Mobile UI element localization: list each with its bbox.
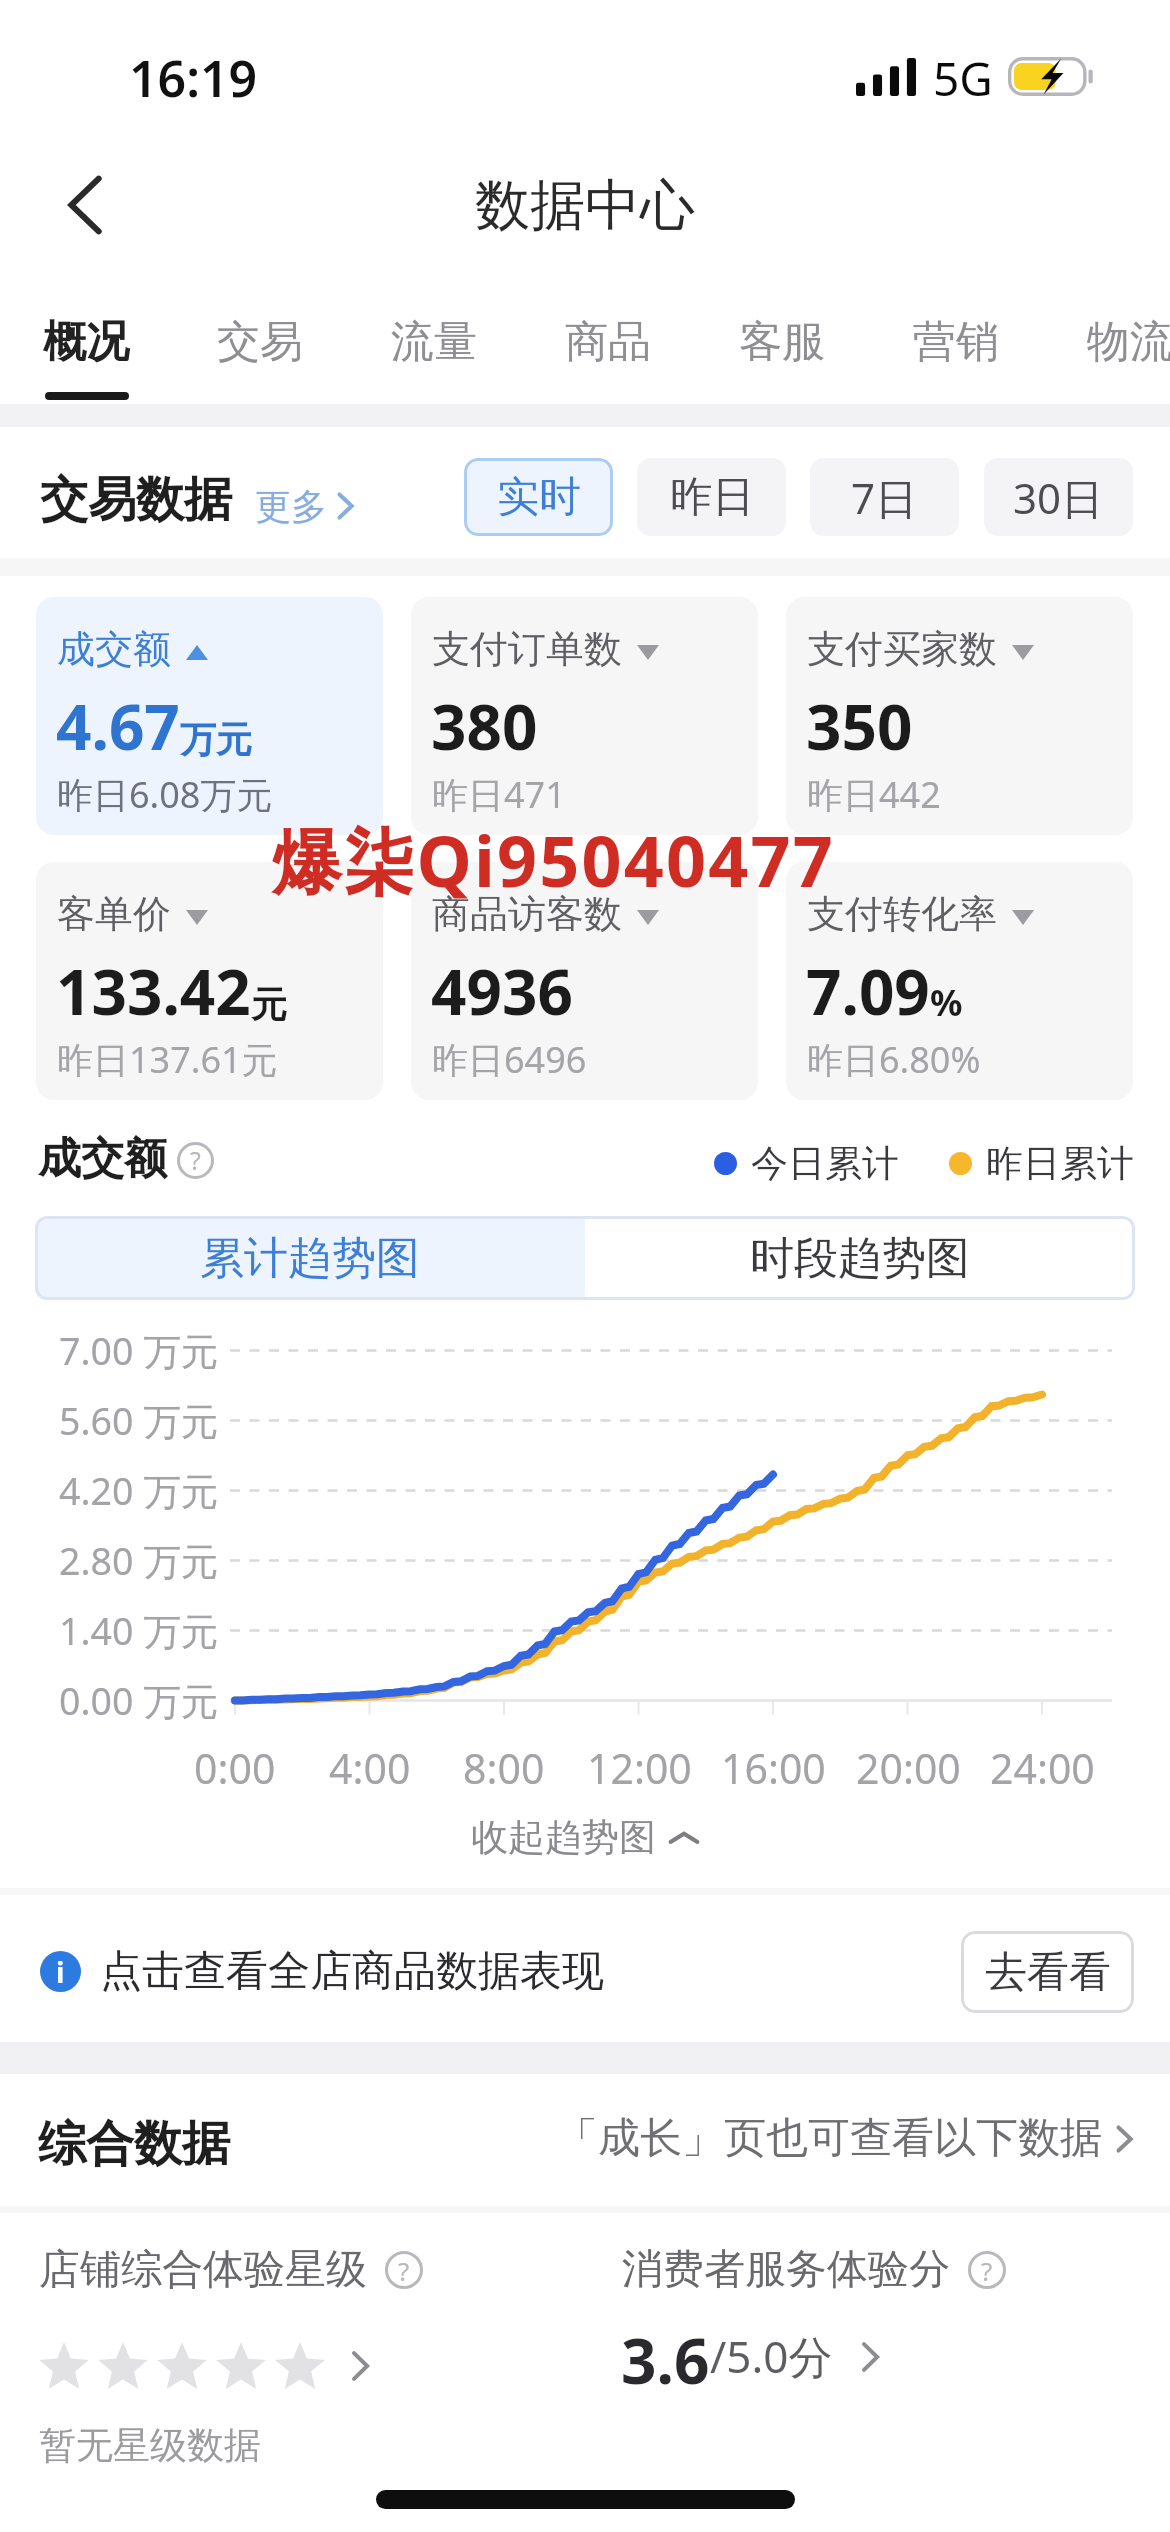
staticText: 去看看: [985, 1946, 1111, 1999]
staticText: 爆柒Qi95040477: [272, 812, 836, 908]
button[interactable]: 交易: [173, 295, 347, 400]
button[interactable]: 时段趋势图: [585, 1216, 1135, 1300]
button[interactable]: 更多: [255, 478, 359, 534]
staticText: 更多: [255, 484, 327, 529]
button[interactable]: 30日: [984, 458, 1133, 536]
staticText: 30日: [1013, 469, 1104, 526]
staticText: 1.40 万元: [59, 1605, 219, 1656]
staticText: 累计趋势图: [200, 1231, 420, 1286]
staticText: %: [930, 978, 963, 1027]
staticText: 营销: [913, 315, 999, 369]
button[interactable]: 昨日: [637, 458, 786, 536]
staticText: 综合数据: [38, 2114, 230, 2174]
button[interactable]: 概况: [0, 295, 173, 400]
staticText: 3.6: [621, 2318, 710, 2390]
staticText: 4936: [431, 949, 573, 1033]
staticText: 0.00 万元: [59, 1675, 219, 1726]
staticText: 店铺综合体验星级: [39, 2244, 367, 2296]
staticText: 商品访客数: [432, 890, 622, 938]
staticText: 物流: [1087, 315, 1170, 369]
staticText: i: [56, 1953, 65, 1991]
button[interactable]: 支付订单数: [411, 597, 758, 835]
staticText: 7.09: [806, 949, 930, 1033]
staticText: 时段趋势图: [750, 1231, 970, 1286]
staticText: 暂无星级数据: [39, 2422, 261, 2469]
staticText: 交易数据: [40, 470, 232, 530]
button[interactable]: Back: [30, 150, 140, 260]
staticText: 昨日: [670, 471, 754, 524]
staticText: 昨日6.80%: [807, 1035, 981, 1084]
staticText: 12:00: [587, 1740, 692, 1796]
staticText: 昨日137.61元: [57, 1035, 278, 1084]
staticText: 客服: [739, 315, 825, 369]
button[interactable]: 客单价: [36, 862, 383, 1100]
button[interactable]: 实时: [464, 458, 613, 536]
staticText: 实时: [497, 471, 581, 524]
staticText: 点击查看全店商品数据表现: [100, 1945, 604, 1998]
staticText: 0:00: [194, 1740, 276, 1796]
staticText: 5G: [933, 47, 993, 110]
staticText: 4.20 万元: [59, 1465, 219, 1516]
staticText: 16:19: [129, 44, 258, 112]
staticText: 收起趋势图: [471, 1814, 656, 1861]
button[interactable]: 物流: [1043, 295, 1170, 400]
staticText: 16:00: [721, 1740, 826, 1796]
staticText: 4.67: [56, 684, 180, 768]
staticText: 商品: [565, 315, 651, 369]
staticText: 7日: [851, 469, 918, 526]
staticText: ?: [190, 1143, 201, 1177]
staticText: 概况: [43, 315, 129, 369]
button[interactable]: 3.6: [621, 2318, 885, 2390]
staticText: 元: [251, 982, 287, 1027]
staticText: 万元: [180, 717, 252, 762]
staticText: 350: [806, 684, 913, 768]
staticText: 380: [431, 684, 538, 768]
staticText: 今日累计: [751, 1140, 899, 1187]
staticText: 交易: [217, 315, 303, 369]
staticText: 20:00: [856, 1740, 961, 1796]
staticText: 7.00 万元: [59, 1325, 219, 1376]
button[interactable]: 收起趋势图: [471, 1814, 700, 1861]
staticText: 成交额: [57, 625, 171, 673]
staticText: ?: [398, 2253, 410, 2288]
staticText: 5.60 万元: [59, 1395, 219, 1446]
button[interactable]: 去看看: [961, 1931, 1134, 2013]
button[interactable]: 综合数据: [0, 2072, 1170, 2205]
staticText: 「成长」页也可查看以下数据: [556, 2112, 1102, 2165]
staticText: 流量: [391, 315, 477, 369]
staticText: 支付买家数: [807, 625, 997, 673]
button[interactable]: 累计趋势图: [35, 1216, 585, 1300]
staticText: 昨日6.08万元: [57, 770, 273, 819]
button[interactable]: 商品访客数: [411, 862, 758, 1100]
staticText: 昨日累计: [986, 1140, 1134, 1187]
staticText: 消费者服务体验分: [622, 2244, 950, 2296]
staticText: 支付订单数: [432, 625, 622, 673]
button[interactable]: [38, 2334, 375, 2398]
staticText: 昨日442: [807, 770, 941, 819]
staticText: 客单价: [57, 890, 171, 938]
staticText: 昨日6496: [432, 1035, 587, 1084]
staticText: /5.0分: [710, 2326, 833, 2386]
staticText: 成交额: [38, 1132, 167, 1186]
button[interactable]: Help: [177, 1142, 214, 1179]
button[interactable]: 营销: [869, 295, 1043, 400]
button[interactable]: 支付转化率: [786, 862, 1133, 1100]
button[interactable]: 流量: [347, 295, 521, 400]
button[interactable]: 支付买家数: [786, 597, 1133, 835]
staticText: 133.42: [56, 949, 251, 1033]
button[interactable]: 成交额: [36, 597, 383, 835]
staticText: 8:00: [463, 1740, 545, 1796]
staticText: 2.80 万元: [59, 1535, 219, 1586]
button[interactable]: 7日: [810, 458, 959, 536]
button[interactable]: 商品: [521, 295, 695, 400]
staticText: ?: [981, 2253, 993, 2288]
staticText: 24:00: [990, 1740, 1095, 1796]
staticText: 数据中心: [475, 171, 695, 240]
staticText: 支付转化率: [807, 890, 997, 938]
staticText: 昨日471: [432, 770, 566, 819]
staticText: 4:00: [329, 1740, 411, 1796]
button[interactable]: 客服: [695, 295, 869, 400]
